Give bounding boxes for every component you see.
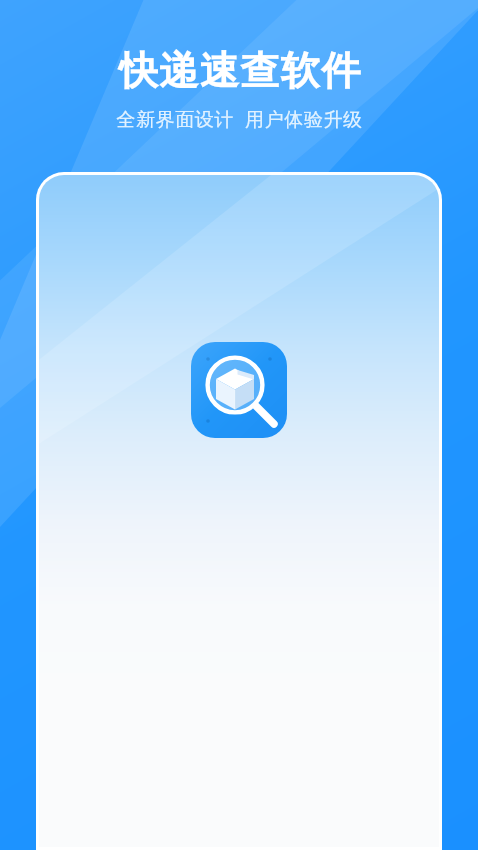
staticText: 全新界面设计 用户体验升级	[116, 106, 363, 132]
button[interactable]: 快递速查软件 应用图标	[36, 172, 442, 850]
staticText: 快递速查软件	[118, 46, 361, 95]
button[interactable]: 快递速查软件 应用图标	[191, 342, 287, 438]
